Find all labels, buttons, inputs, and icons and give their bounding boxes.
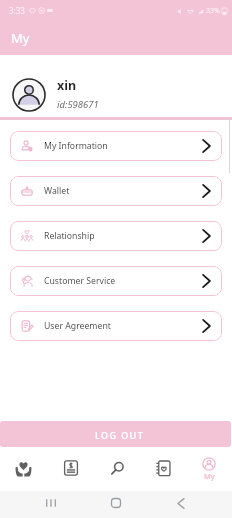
button[interactable]: Customer Service	[10, 266, 222, 296]
staticText: id:598671	[57, 98, 99, 111]
staticText: Customer Service	[44, 275, 116, 287]
staticText: My	[11, 29, 30, 47]
button[interactable]: My	[186, 447, 232, 491]
button[interactable]: User Agreement	[10, 311, 222, 341]
button[interactable]: LOG OUT	[0, 421, 231, 447]
button[interactable]: Orders	[47, 447, 94, 491]
staticText: User Agreement	[44, 320, 111, 332]
staticText: xin	[57, 77, 77, 94]
staticText: LOG OUT	[95, 429, 145, 441]
button[interactable]: Wallet	[10, 176, 222, 206]
button[interactable]: Relationship	[10, 221, 222, 251]
staticText: My Information	[44, 140, 108, 152]
staticText: Wallet	[44, 185, 70, 197]
button[interactable]: Diary	[140, 447, 186, 491]
button[interactable]: Donate	[0, 447, 47, 491]
button[interactable]: My Information	[10, 131, 222, 161]
staticText: 33%	[206, 6, 220, 16]
staticText: Relationship	[44, 230, 95, 242]
staticText: 3:33	[9, 5, 25, 16]
staticText: My	[204, 471, 215, 481]
button[interactable]: Search	[94, 447, 140, 491]
